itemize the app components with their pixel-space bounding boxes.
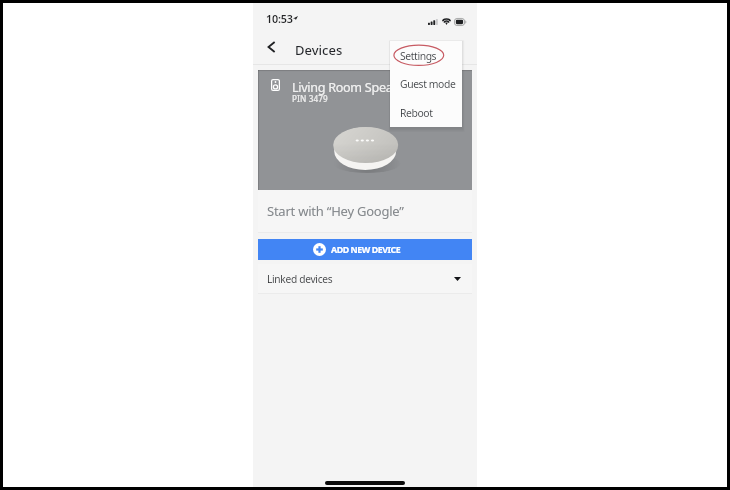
button[interactable]: Linked devices	[258, 264, 472, 294]
button[interactable]: Start with “Hey Google”	[258, 190, 472, 233]
button[interactable]: ADD NEW DEVICE	[258, 239, 472, 260]
staticText: Settings	[400, 49, 437, 63]
staticText: Start with “Hey Google”	[267, 202, 404, 220]
button[interactable]: Back	[256, 32, 286, 62]
staticText: Living Room Speaker	[292, 79, 411, 96]
staticText: Linked devices	[267, 272, 333, 286]
staticText: Reboot	[400, 106, 433, 120]
staticText: PIN 3479	[292, 93, 328, 104]
button[interactable]: Guest mode	[390, 72, 462, 100]
staticText: 10:53	[266, 11, 293, 26]
staticText: Devices	[295, 41, 343, 59]
button[interactable]: Settings	[390, 44, 462, 72]
staticText: Guest mode	[400, 77, 456, 91]
staticText: ADD NEW DEVICE	[331, 244, 401, 256]
button[interactable]: Reboot	[390, 101, 462, 129]
